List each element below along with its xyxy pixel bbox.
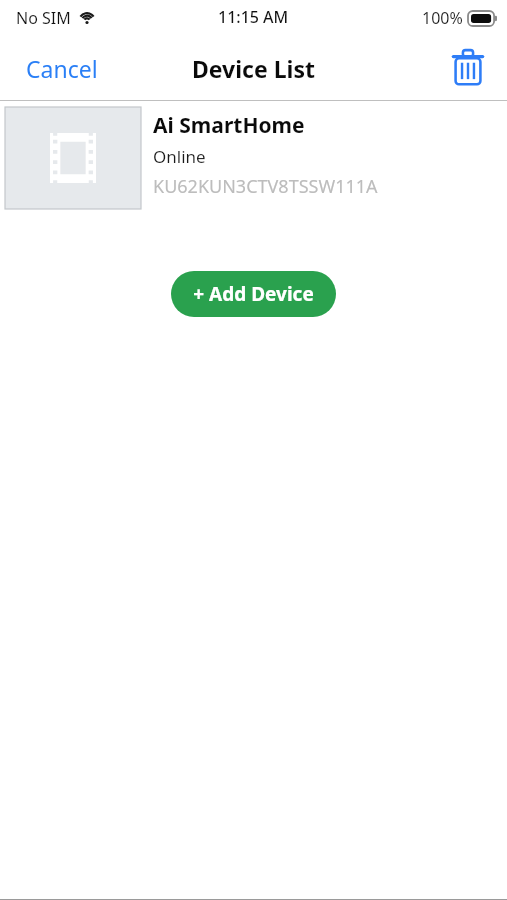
staticText: + Add Device: [193, 281, 314, 307]
button[interactable]: Delete: [451, 49, 485, 87]
staticText: 11:15 AM: [218, 6, 289, 28]
button[interactable]: Cancel: [0, 43, 124, 94]
staticText: Online: [153, 145, 206, 168]
staticText: KU62KUN3CTV8TSSW111A: [153, 174, 378, 199]
staticText: 100%: [422, 7, 463, 29]
button[interactable]: Ai SmartHome: [0, 101, 507, 215]
staticText: Device List: [192, 53, 315, 84]
staticText: No SIM: [16, 7, 71, 29]
staticText: Cancel: [26, 53, 98, 84]
button[interactable]: + Add Device: [171, 271, 336, 317]
staticText: Ai SmartHome: [153, 111, 305, 140]
